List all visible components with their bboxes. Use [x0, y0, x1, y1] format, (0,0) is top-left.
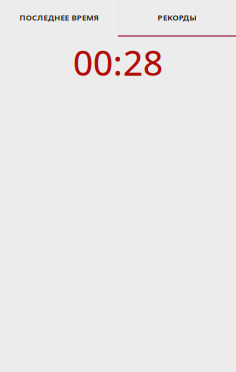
staticText: ПОСЛЕДНЕЕ ВРЕМЯ	[19, 12, 99, 23]
button[interactable]: РЕКОРДЫ	[118, 0, 236, 35]
button[interactable]: ПОСЛЕДНЕЕ ВРЕМЯ	[0, 0, 118, 35]
staticText: 00:28	[73, 38, 163, 86]
staticText: РЕКОРДЫ	[158, 12, 196, 23]
